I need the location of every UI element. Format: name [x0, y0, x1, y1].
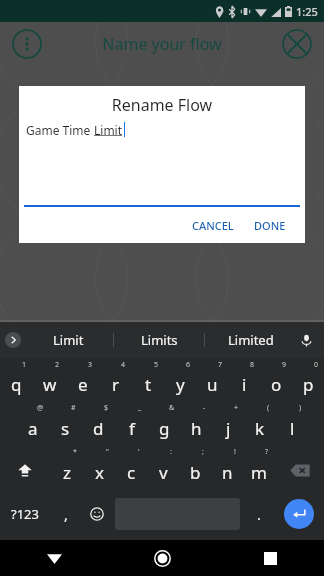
staticText: k	[255, 417, 265, 440]
staticText: #	[71, 403, 76, 413]
staticText: a	[28, 417, 38, 440]
staticText: 5	[154, 360, 159, 370]
button[interactable]: ?123	[0, 492, 50, 536]
staticText: 3	[88, 360, 93, 370]
staticText: ,	[64, 505, 68, 524]
button[interactable]: Limit	[22, 322, 114, 358]
staticText: Game Time	[26, 122, 94, 138]
button[interactable]: DONE	[247, 213, 293, 238]
button[interactable]: r	[99, 361, 132, 404]
staticText: i	[242, 373, 247, 396]
button[interactable]: k	[244, 404, 276, 448]
staticText: q	[11, 373, 22, 396]
button[interactable]: t	[132, 361, 164, 404]
button[interactable]: Limits	[114, 322, 205, 358]
button[interactable]: Recent apps	[216, 540, 324, 576]
button[interactable]: n	[211, 448, 243, 492]
staticText: 9	[282, 360, 287, 370]
button[interactable]: p	[292, 361, 324, 404]
staticText: $	[104, 403, 109, 413]
button[interactable]: c	[115, 448, 147, 492]
staticText: p	[303, 373, 314, 396]
staticText: m	[251, 461, 267, 484]
staticText: n	[222, 461, 233, 484]
staticText: y	[176, 373, 185, 396]
button[interactable]: d	[82, 404, 115, 448]
button[interactable]: i	[228, 361, 260, 404]
button[interactable]: m	[243, 448, 275, 492]
staticText: )	[299, 403, 302, 413]
staticText: ?	[265, 447, 269, 457]
staticText: l	[290, 417, 295, 440]
button[interactable]: y	[164, 361, 196, 404]
staticText: 2	[55, 360, 60, 370]
staticText: h	[191, 417, 202, 440]
button[interactable]: v	[147, 448, 179, 492]
button[interactable]: h	[180, 404, 212, 448]
staticText: '	[138, 447, 140, 457]
button[interactable]: More options	[10, 27, 44, 61]
staticText: (	[267, 403, 270, 413]
button[interactable]: j	[212, 404, 244, 448]
staticText: -	[203, 403, 206, 413]
button[interactable]: Limited	[205, 322, 296, 358]
staticText: e	[78, 373, 88, 396]
button[interactable]: Shift	[0, 448, 50, 492]
staticText: +	[234, 403, 239, 413]
staticText: ;	[202, 447, 204, 457]
button[interactable]: x	[83, 448, 115, 492]
button[interactable]: Backspace	[275, 448, 324, 492]
staticText: w	[43, 373, 57, 396]
staticText: v	[159, 461, 168, 484]
button[interactable]: u	[196, 361, 228, 404]
button[interactable]: Home	[108, 540, 216, 576]
staticText: 6	[186, 360, 191, 370]
button[interactable]: q	[0, 361, 33, 404]
button[interactable]: e	[66, 361, 99, 404]
staticText: 0	[314, 360, 319, 370]
staticText: DONE	[254, 218, 286, 233]
button[interactable]: .	[243, 492, 274, 536]
button[interactable]: CANCEL	[185, 213, 241, 238]
staticText: .	[257, 505, 261, 524]
staticText: z	[63, 461, 71, 484]
button[interactable]: w	[33, 361, 66, 404]
staticText: 1:25	[296, 4, 318, 19]
staticText: _	[138, 403, 142, 413]
staticText: Limited	[228, 331, 274, 349]
button[interactable]: Voice input	[294, 328, 318, 352]
staticText: &	[169, 403, 175, 413]
button[interactable]: g	[148, 404, 180, 448]
button[interactable]: Emoji	[81, 492, 112, 536]
staticText: s	[61, 417, 70, 440]
button[interactable]: f	[115, 404, 148, 448]
button[interactable]: Close	[280, 27, 314, 61]
staticText: x	[95, 461, 104, 484]
staticText: d	[93, 417, 104, 440]
staticText: u	[207, 373, 218, 396]
button[interactable]: a	[16, 404, 49, 448]
staticText: 1	[22, 360, 27, 370]
button[interactable]: s	[49, 404, 82, 448]
button[interactable]: Enter	[284, 499, 314, 529]
staticText: t	[145, 373, 152, 396]
staticText: :	[170, 447, 172, 457]
staticText: Rename Flow	[19, 94, 305, 116]
button[interactable]: Hide keyboard	[0, 540, 108, 576]
staticText: Limit	[94, 122, 123, 138]
staticText: c	[127, 461, 136, 484]
staticText: g	[159, 417, 170, 440]
button[interactable]: Game Time	[19, 116, 305, 207]
staticText: *	[73, 447, 77, 457]
button[interactable]: l	[276, 404, 308, 448]
button[interactable]: o	[260, 361, 292, 404]
button[interactable]: Expand suggestions	[2, 329, 24, 351]
button[interactable]: z	[50, 448, 83, 492]
staticText: Name your flow	[102, 33, 222, 55]
staticText: "	[106, 447, 109, 457]
staticText: f	[129, 417, 135, 440]
button[interactable]: ,	[50, 492, 81, 536]
staticText: Limit	[53, 331, 84, 349]
button[interactable]: b	[179, 448, 211, 492]
